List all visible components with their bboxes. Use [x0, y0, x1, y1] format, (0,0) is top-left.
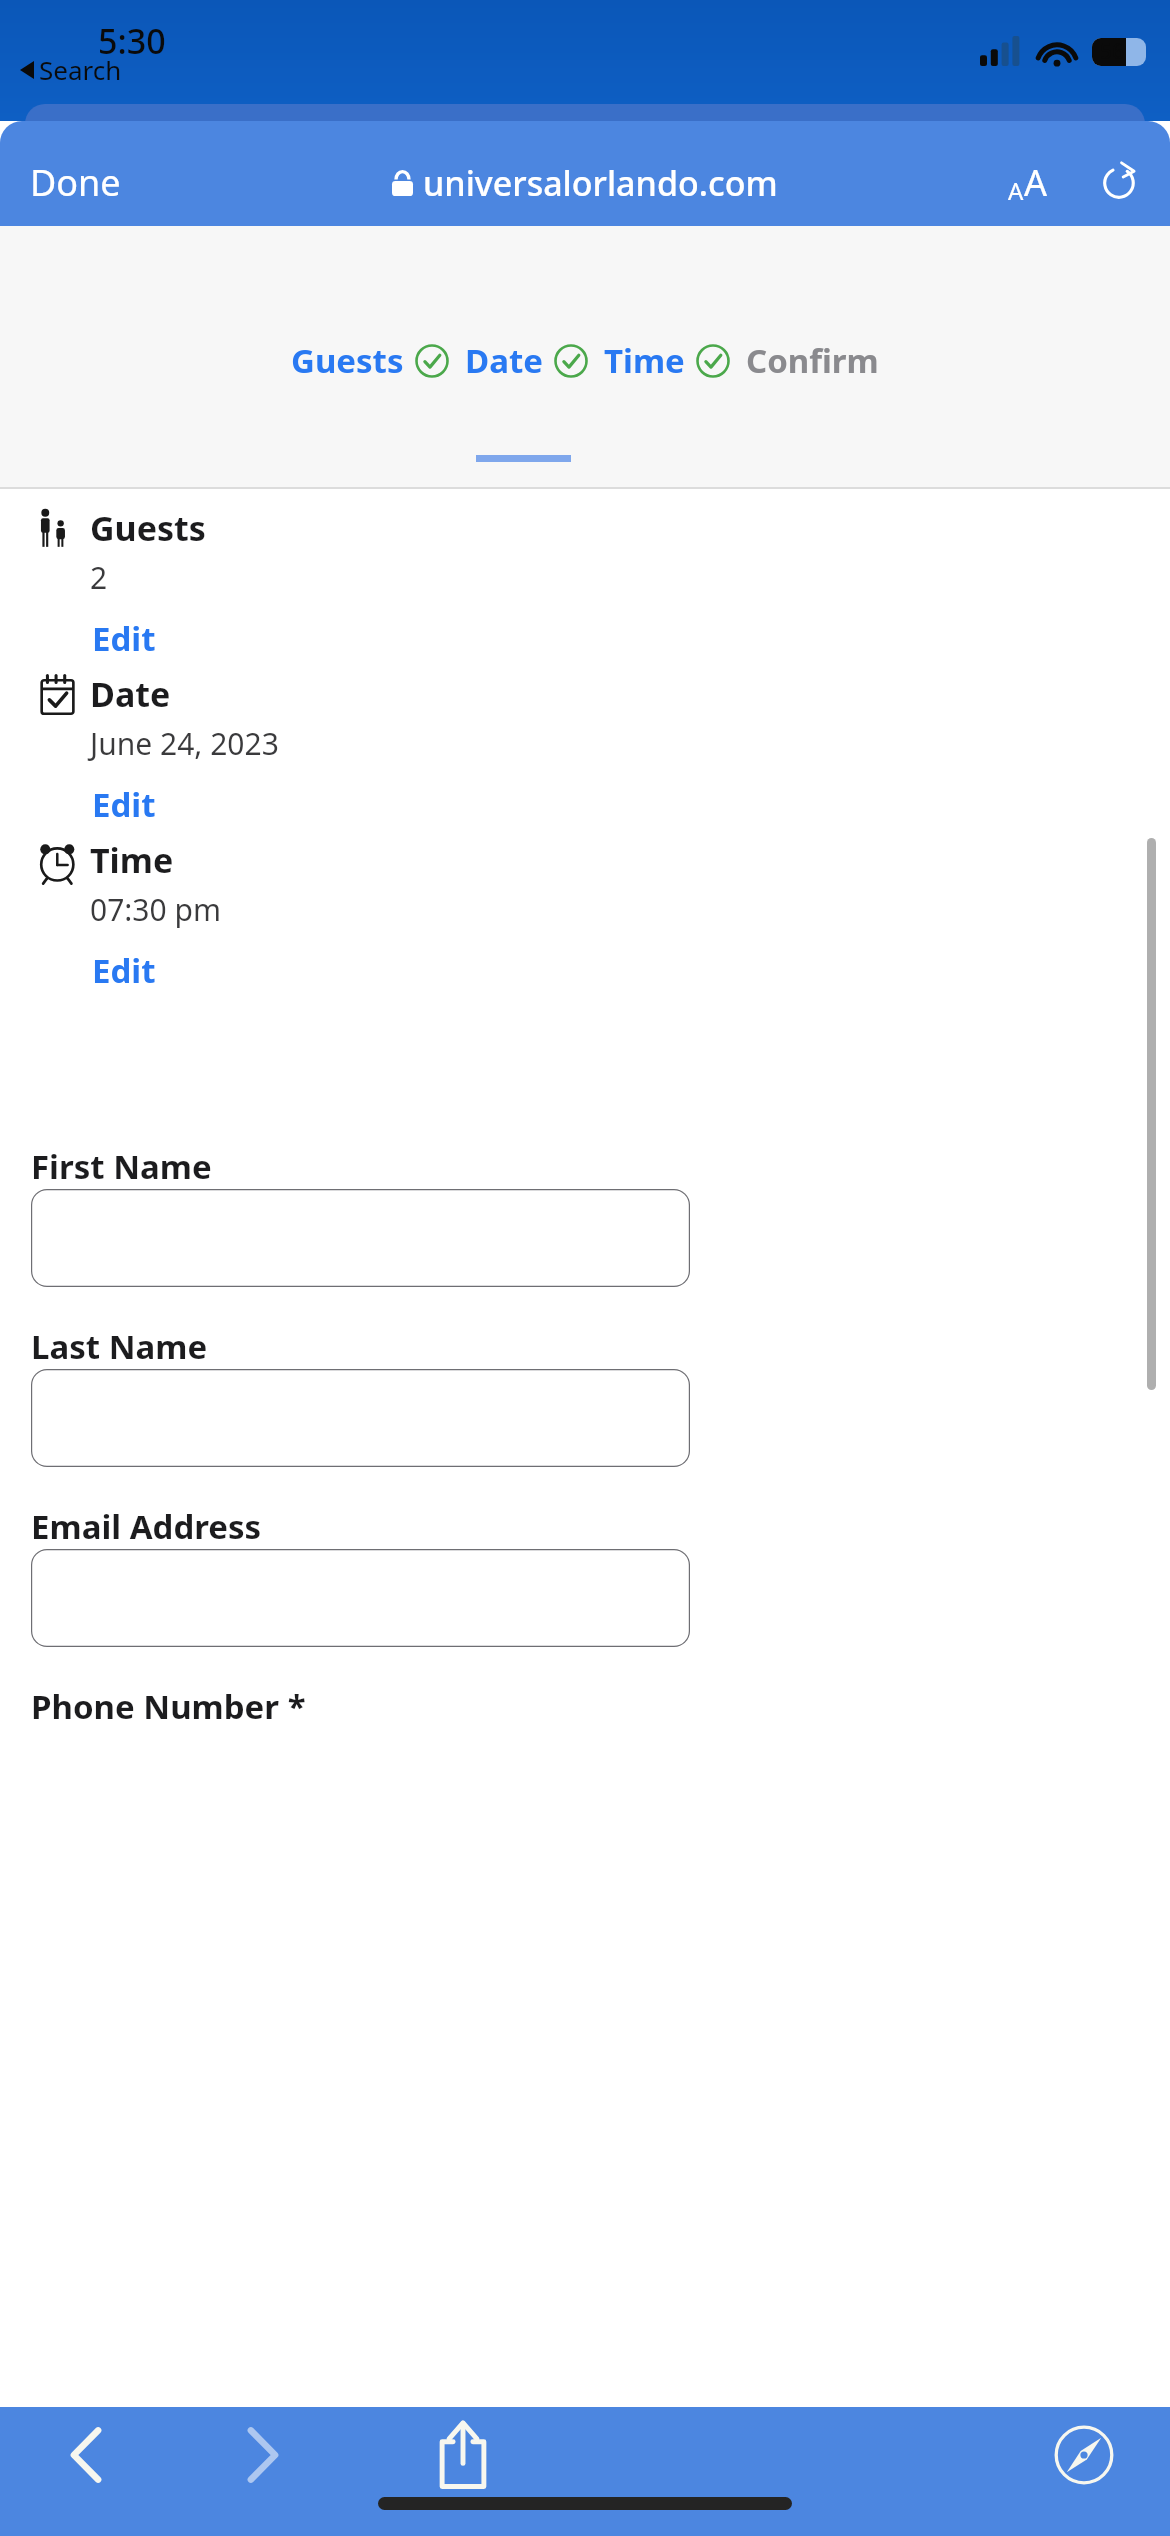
staticText: A — [1024, 158, 1048, 207]
staticText: 2 — [90, 557, 108, 598]
button[interactable]: Date — [463, 332, 545, 389]
button[interactable]: universalorlando.com — [380, 154, 790, 212]
staticText: June 24, 2023 — [90, 723, 279, 764]
button[interactable]: Reload — [1088, 152, 1150, 214]
button[interactable]: Done — [0, 152, 151, 213]
button[interactable]: Confirm — [744, 332, 881, 389]
button[interactable]: Forward — [215, 2407, 311, 2503]
button[interactable]: Back — [38, 2407, 134, 2503]
staticText: Date — [90, 671, 171, 717]
button[interactable]: Guests — [289, 332, 406, 389]
staticText: 07:30 pm — [90, 889, 221, 930]
button[interactable]: Edit — [90, 944, 158, 997]
staticText: Phone Number * — [31, 1684, 306, 1729]
button[interactable]: Share — [415, 2407, 511, 2503]
button[interactable]: Text size — [998, 148, 1058, 217]
staticText: Time — [90, 837, 174, 883]
staticText: 56 — [1100, 37, 1125, 66]
button[interactable]: Edit — [90, 612, 158, 665]
button[interactable] — [31, 1189, 690, 1287]
button[interactable] — [31, 1369, 690, 1467]
staticText: 5:30 — [98, 18, 166, 64]
staticText: A — [1008, 174, 1024, 207]
staticText: Guests — [90, 505, 206, 551]
button[interactable]: Time — [602, 332, 687, 389]
staticText: universalorlando.com — [423, 160, 778, 206]
button[interactable] — [31, 1549, 690, 1647]
button[interactable]: Tabs — [1036, 2407, 1132, 2503]
button[interactable]: Edit — [90, 778, 158, 831]
staticText: Search — [39, 52, 122, 87]
staticText: Email Address — [31, 1504, 262, 1549]
staticText: Last Name — [31, 1324, 208, 1369]
staticText: First Name — [31, 1144, 212, 1189]
